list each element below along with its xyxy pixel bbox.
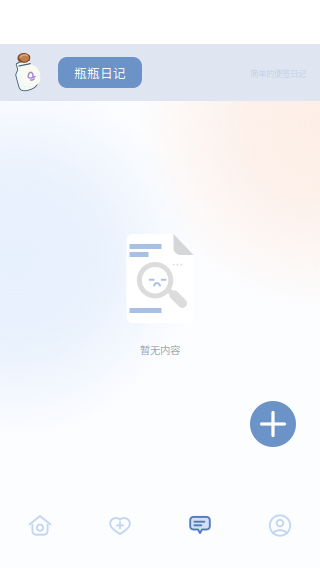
button[interactable]: Notes (160, 501, 240, 550)
button[interactable]: Favorites (80, 501, 160, 550)
button[interactable]: 瓶瓶日记 (58, 57, 142, 88)
staticText: 简单的便签日记 (250, 67, 306, 79)
button[interactable]: Profile (240, 501, 320, 550)
button[interactable]: New entry (250, 401, 296, 447)
button[interactable]: Home (0, 501, 80, 550)
staticText: 暂无内容 (140, 342, 180, 357)
staticText: 瓶瓶日记 (74, 63, 126, 82)
